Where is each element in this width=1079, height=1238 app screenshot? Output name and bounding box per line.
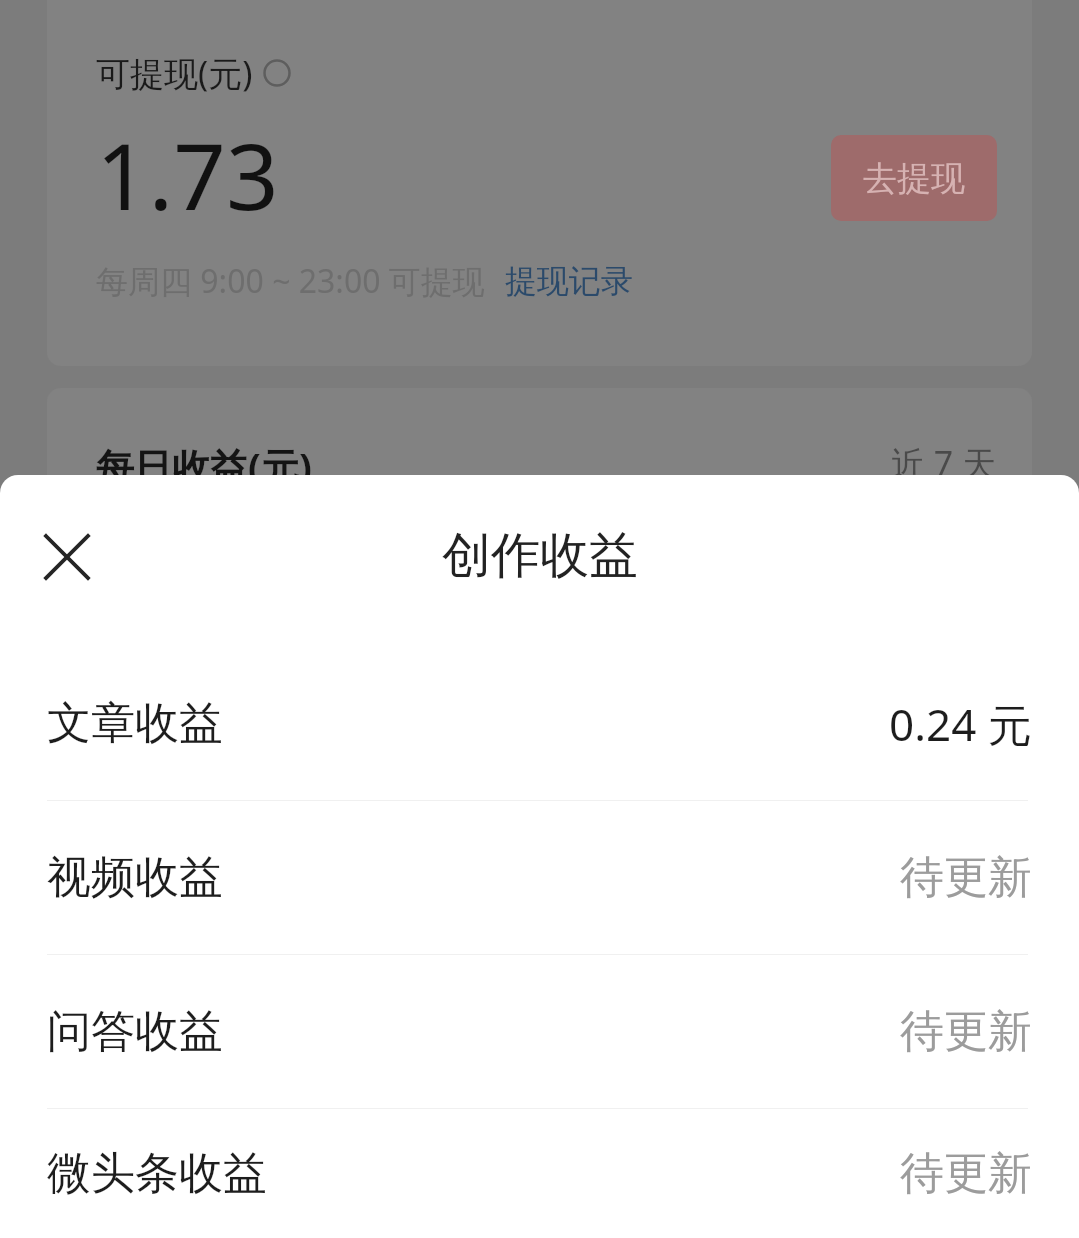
staticText: 待更新: [900, 1004, 1032, 1059]
staticText: 去提现: [863, 157, 965, 200]
button[interactable]: Close: [28, 518, 106, 596]
staticText: 待更新: [900, 850, 1032, 905]
button[interactable]: 视频收益: [0, 801, 1079, 954]
staticText: 0.24 元: [889, 694, 1032, 754]
staticText: 待更新: [900, 1146, 1032, 1201]
staticText: 每周四 9:00 ~ 23:00 可提现: [96, 259, 485, 303]
button[interactable]: 去提现: [831, 135, 997, 221]
staticText: 可提现(元): [96, 50, 253, 96]
button[interactable]: 文章收益: [0, 647, 1079, 800]
staticText: 每日收益(元): [96, 440, 312, 492]
staticText: 文章收益: [47, 696, 223, 751]
button[interactable]: 提现记录: [505, 261, 633, 301]
staticText: 创作收益: [442, 525, 638, 587]
staticText: 微头条收益: [47, 1146, 267, 1201]
button[interactable]: 问答收益: [0, 955, 1079, 1108]
staticText: 近 7 天: [891, 440, 997, 486]
staticText: 视频收益: [47, 850, 223, 905]
staticText: 1.73: [96, 112, 279, 237]
staticText: 问答收益: [47, 1004, 223, 1059]
button[interactable]: 微头条收益: [0, 1109, 1079, 1238]
